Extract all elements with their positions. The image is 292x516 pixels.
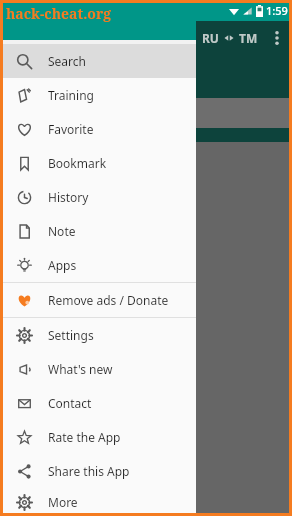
button[interactable]: Clipboard <box>2 100 28 126</box>
staticText: TM <box>239 30 258 46</box>
button[interactable]: Training <box>0 78 196 112</box>
button[interactable]: Bookmark <box>0 146 196 180</box>
staticText: Favorite <box>48 121 94 137</box>
staticText: Note <box>48 223 76 239</box>
staticText: Recent <box>0 343 42 361</box>
button[interactable]: Recent <box>0 338 292 366</box>
staticText: History <box>48 189 89 205</box>
staticText: RU <box>202 30 219 46</box>
button[interactable]: More <box>0 488 196 516</box>
staticText: 1:59 <box>266 3 288 18</box>
button[interactable]: Settings <box>66 100 92 126</box>
staticText: Rate the App <box>48 429 121 445</box>
button[interactable]: HISTOR <box>72 67 112 82</box>
staticText: Search <box>48 53 86 69</box>
button[interactable]: Apps <box>0 248 196 282</box>
button[interactable]: Note <box>0 214 196 248</box>
staticText: Settings <box>48 327 94 343</box>
staticText: Remove ads / Donate <box>48 292 169 308</box>
staticText: More <box>48 494 78 510</box>
staticText: hack-cheat.org <box>6 4 112 23</box>
staticText: HISTOR <box>72 67 112 82</box>
button[interactable]: Remove ads / Donate <box>0 283 196 317</box>
button[interactable]: History <box>0 180 196 214</box>
staticText: Apps <box>48 257 77 273</box>
button[interactable]: Voice input <box>34 100 60 126</box>
button[interactable]: OKMARK <box>0 67 54 82</box>
button[interactable]: Favorite <box>0 112 196 146</box>
button[interactable]: Search <box>0 44 196 78</box>
button[interactable]: Contact <box>0 386 196 420</box>
staticText: Share this App <box>48 463 130 479</box>
button[interactable]: Rate the App <box>0 420 196 454</box>
staticText: Bookmark <box>48 155 107 171</box>
staticText: OKMARK <box>0 67 47 82</box>
staticText: What's new <box>48 361 113 377</box>
button[interactable]: Share this App <box>0 454 196 488</box>
button[interactable]: More options <box>268 29 286 47</box>
staticText: Contact <box>48 395 92 411</box>
button[interactable]: Settings <box>0 318 196 352</box>
staticText: Training <box>48 87 94 103</box>
button[interactable]: What's new <box>0 352 196 386</box>
